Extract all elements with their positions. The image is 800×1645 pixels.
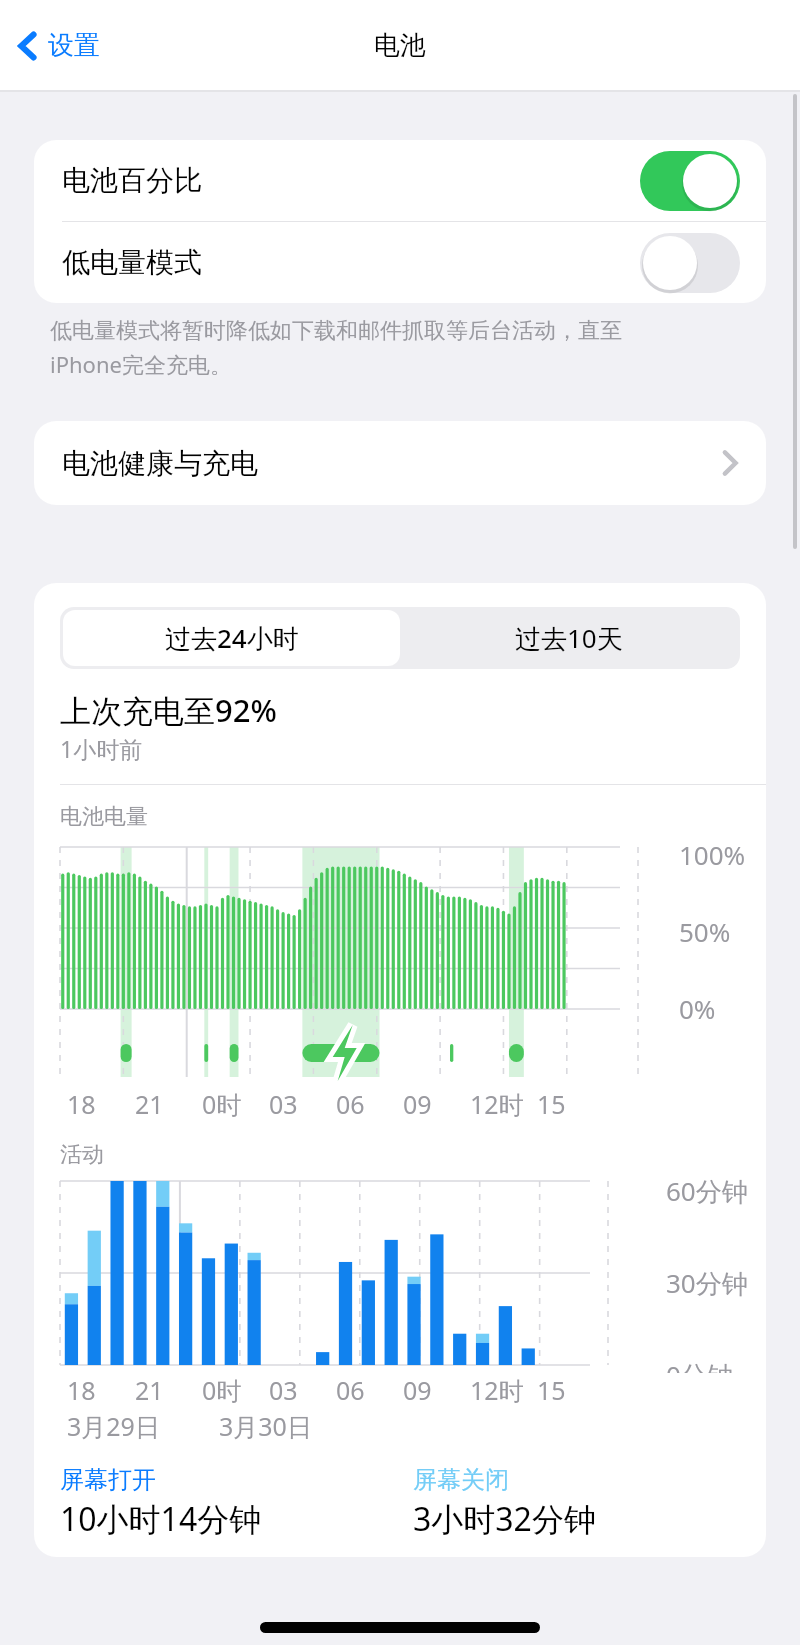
staticText: 03 [269, 1087, 298, 1121]
staticText: 0时 [202, 1373, 242, 1407]
staticText: 18 [67, 1373, 96, 1407]
button[interactable]: Toggle on [640, 151, 740, 211]
staticText: 50% [679, 914, 731, 949]
staticText: 18 [67, 1087, 96, 1121]
button[interactable]: 电池健康与充电 [34, 421, 766, 505]
staticText: 屏幕打开 [60, 1465, 156, 1495]
staticText: 3月29日 [67, 1409, 160, 1443]
staticText: 活动 [60, 1141, 104, 1169]
staticText: 电池 [374, 29, 426, 62]
staticText: 15 [537, 1087, 566, 1121]
staticText: 06 [336, 1087, 365, 1121]
staticText: 12时 [470, 1373, 524, 1407]
staticText: 过去24小时 [165, 620, 299, 656]
staticText: 03 [269, 1373, 298, 1407]
button[interactable]: 过去10天 [400, 610, 737, 666]
staticText: 09 [403, 1373, 432, 1407]
staticText: 0分钟 [666, 1357, 733, 1373]
button[interactable]: 电池百分比 [34, 140, 766, 221]
staticText: 0时 [202, 1087, 242, 1121]
staticText: 3月30日 [219, 1409, 312, 1443]
staticText: 06 [336, 1373, 365, 1407]
staticText: 电池百分比 [62, 163, 202, 198]
staticText: 上次充电至92% [60, 689, 277, 731]
button[interactable]: 设置 [8, 21, 110, 70]
staticText: 1小时前 [60, 733, 143, 764]
staticText: 过去10天 [515, 620, 623, 656]
staticText: 30分钟 [666, 1265, 748, 1301]
staticText: 屏幕关闭 [413, 1465, 509, 1495]
staticText: 0% [679, 991, 716, 1026]
staticText: 09 [403, 1087, 432, 1121]
staticText: 3小时32分钟 [413, 1497, 596, 1541]
staticText: 低电量模式 [62, 245, 202, 280]
staticText: 100% [679, 837, 746, 872]
staticText: 12时 [470, 1087, 524, 1121]
button[interactable]: 过去24小时 [63, 610, 400, 666]
staticText: 电池电量 [60, 803, 148, 831]
button[interactable]: Toggle off [640, 233, 740, 293]
staticText: 21 [135, 1087, 164, 1121]
staticText: 60分钟 [666, 1173, 748, 1209]
button[interactable]: 低电量模式 [34, 222, 766, 303]
staticText: 10小时14分钟 [60, 1497, 262, 1541]
staticText: 21 [135, 1373, 164, 1407]
staticText: 低电量模式将暂时降低如下载和邮件抓取等后台活动，直至 iPhone完全充电。 [50, 317, 622, 379]
staticText: 电池健康与充电 [62, 446, 258, 481]
staticText: 15 [537, 1373, 566, 1407]
staticText: 设置 [48, 29, 100, 62]
